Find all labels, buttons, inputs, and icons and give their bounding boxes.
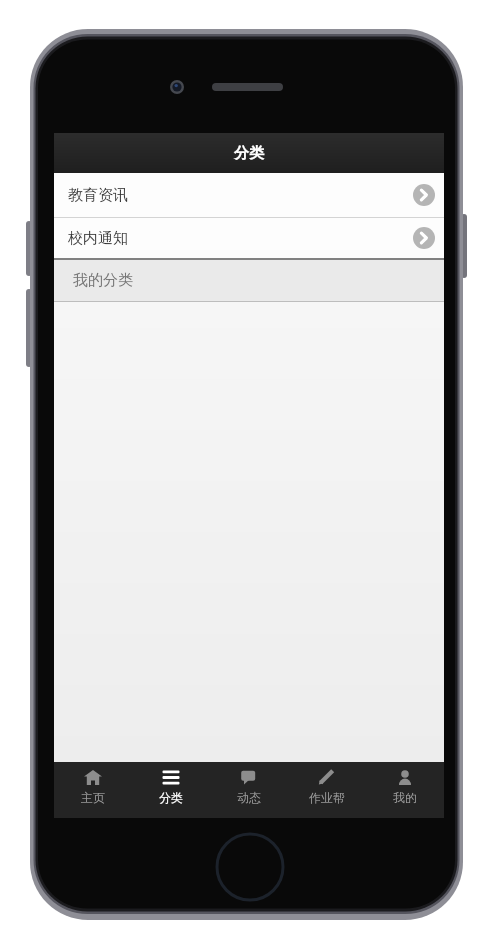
button[interactable]: 校内通知 xyxy=(54,218,444,258)
staticText: 我的分类 xyxy=(73,271,133,290)
button[interactable]: 分类 xyxy=(132,762,210,818)
button[interactable]: 作业帮 xyxy=(288,762,366,818)
staticText: 分类 xyxy=(159,790,183,805)
staticText: 作业帮 xyxy=(309,790,345,805)
staticText: 教育资讯 xyxy=(68,186,128,205)
button[interactable]: 动态 xyxy=(210,762,288,818)
staticText: 校内通知 xyxy=(68,229,128,248)
staticText: 我的 xyxy=(393,790,417,805)
button[interactable]: 我的 xyxy=(366,762,444,818)
button[interactable]: 教育资讯 xyxy=(54,173,444,217)
button[interactable]: 主页 xyxy=(54,762,132,818)
staticText: 分类 xyxy=(234,144,264,163)
staticText: 主页 xyxy=(81,790,105,805)
staticText: 动态 xyxy=(237,790,261,805)
